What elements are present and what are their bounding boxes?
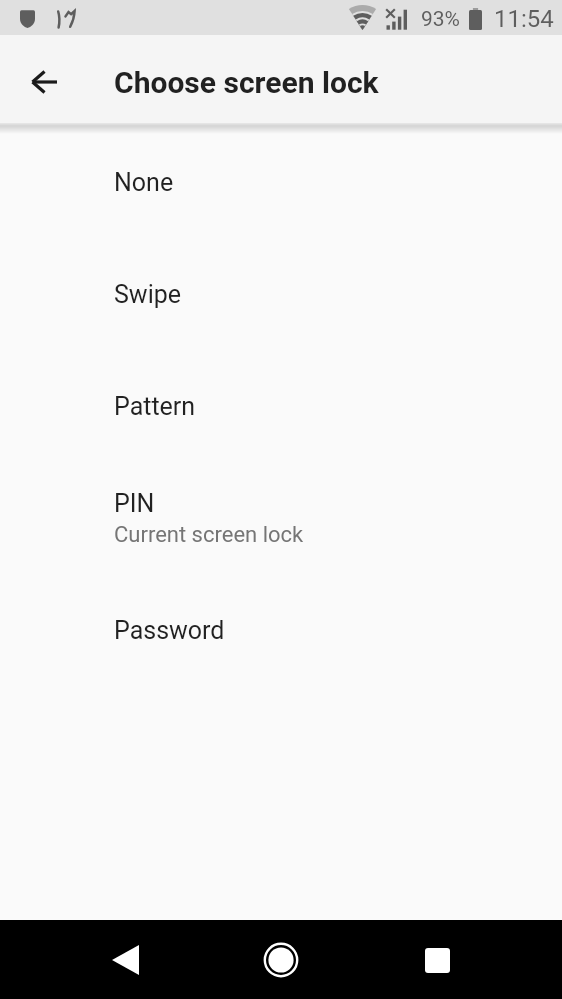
- button[interactable]: Pattern: [0, 350, 562, 462]
- staticText: 93%: [421, 7, 460, 32]
- staticText: None: [114, 168, 174, 197]
- button[interactable]: [257, 936, 305, 984]
- staticText: 11:54: [494, 5, 554, 33]
- staticText: PIN: [114, 489, 155, 518]
- staticText: Pattern: [114, 392, 196, 421]
- button[interactable]: Swipe: [0, 238, 562, 350]
- staticText: Swipe: [114, 280, 182, 309]
- staticText: Password: [114, 616, 225, 645]
- button[interactable]: PIN: [0, 462, 562, 574]
- staticText: Current screen lock: [114, 522, 304, 548]
- button[interactable]: [20, 58, 68, 106]
- staticText: Choose screen lock: [114, 65, 379, 100]
- button[interactable]: None: [0, 126, 562, 238]
- button[interactable]: Password: [0, 574, 562, 686]
- button[interactable]: [101, 936, 149, 984]
- button[interactable]: [413, 936, 461, 984]
